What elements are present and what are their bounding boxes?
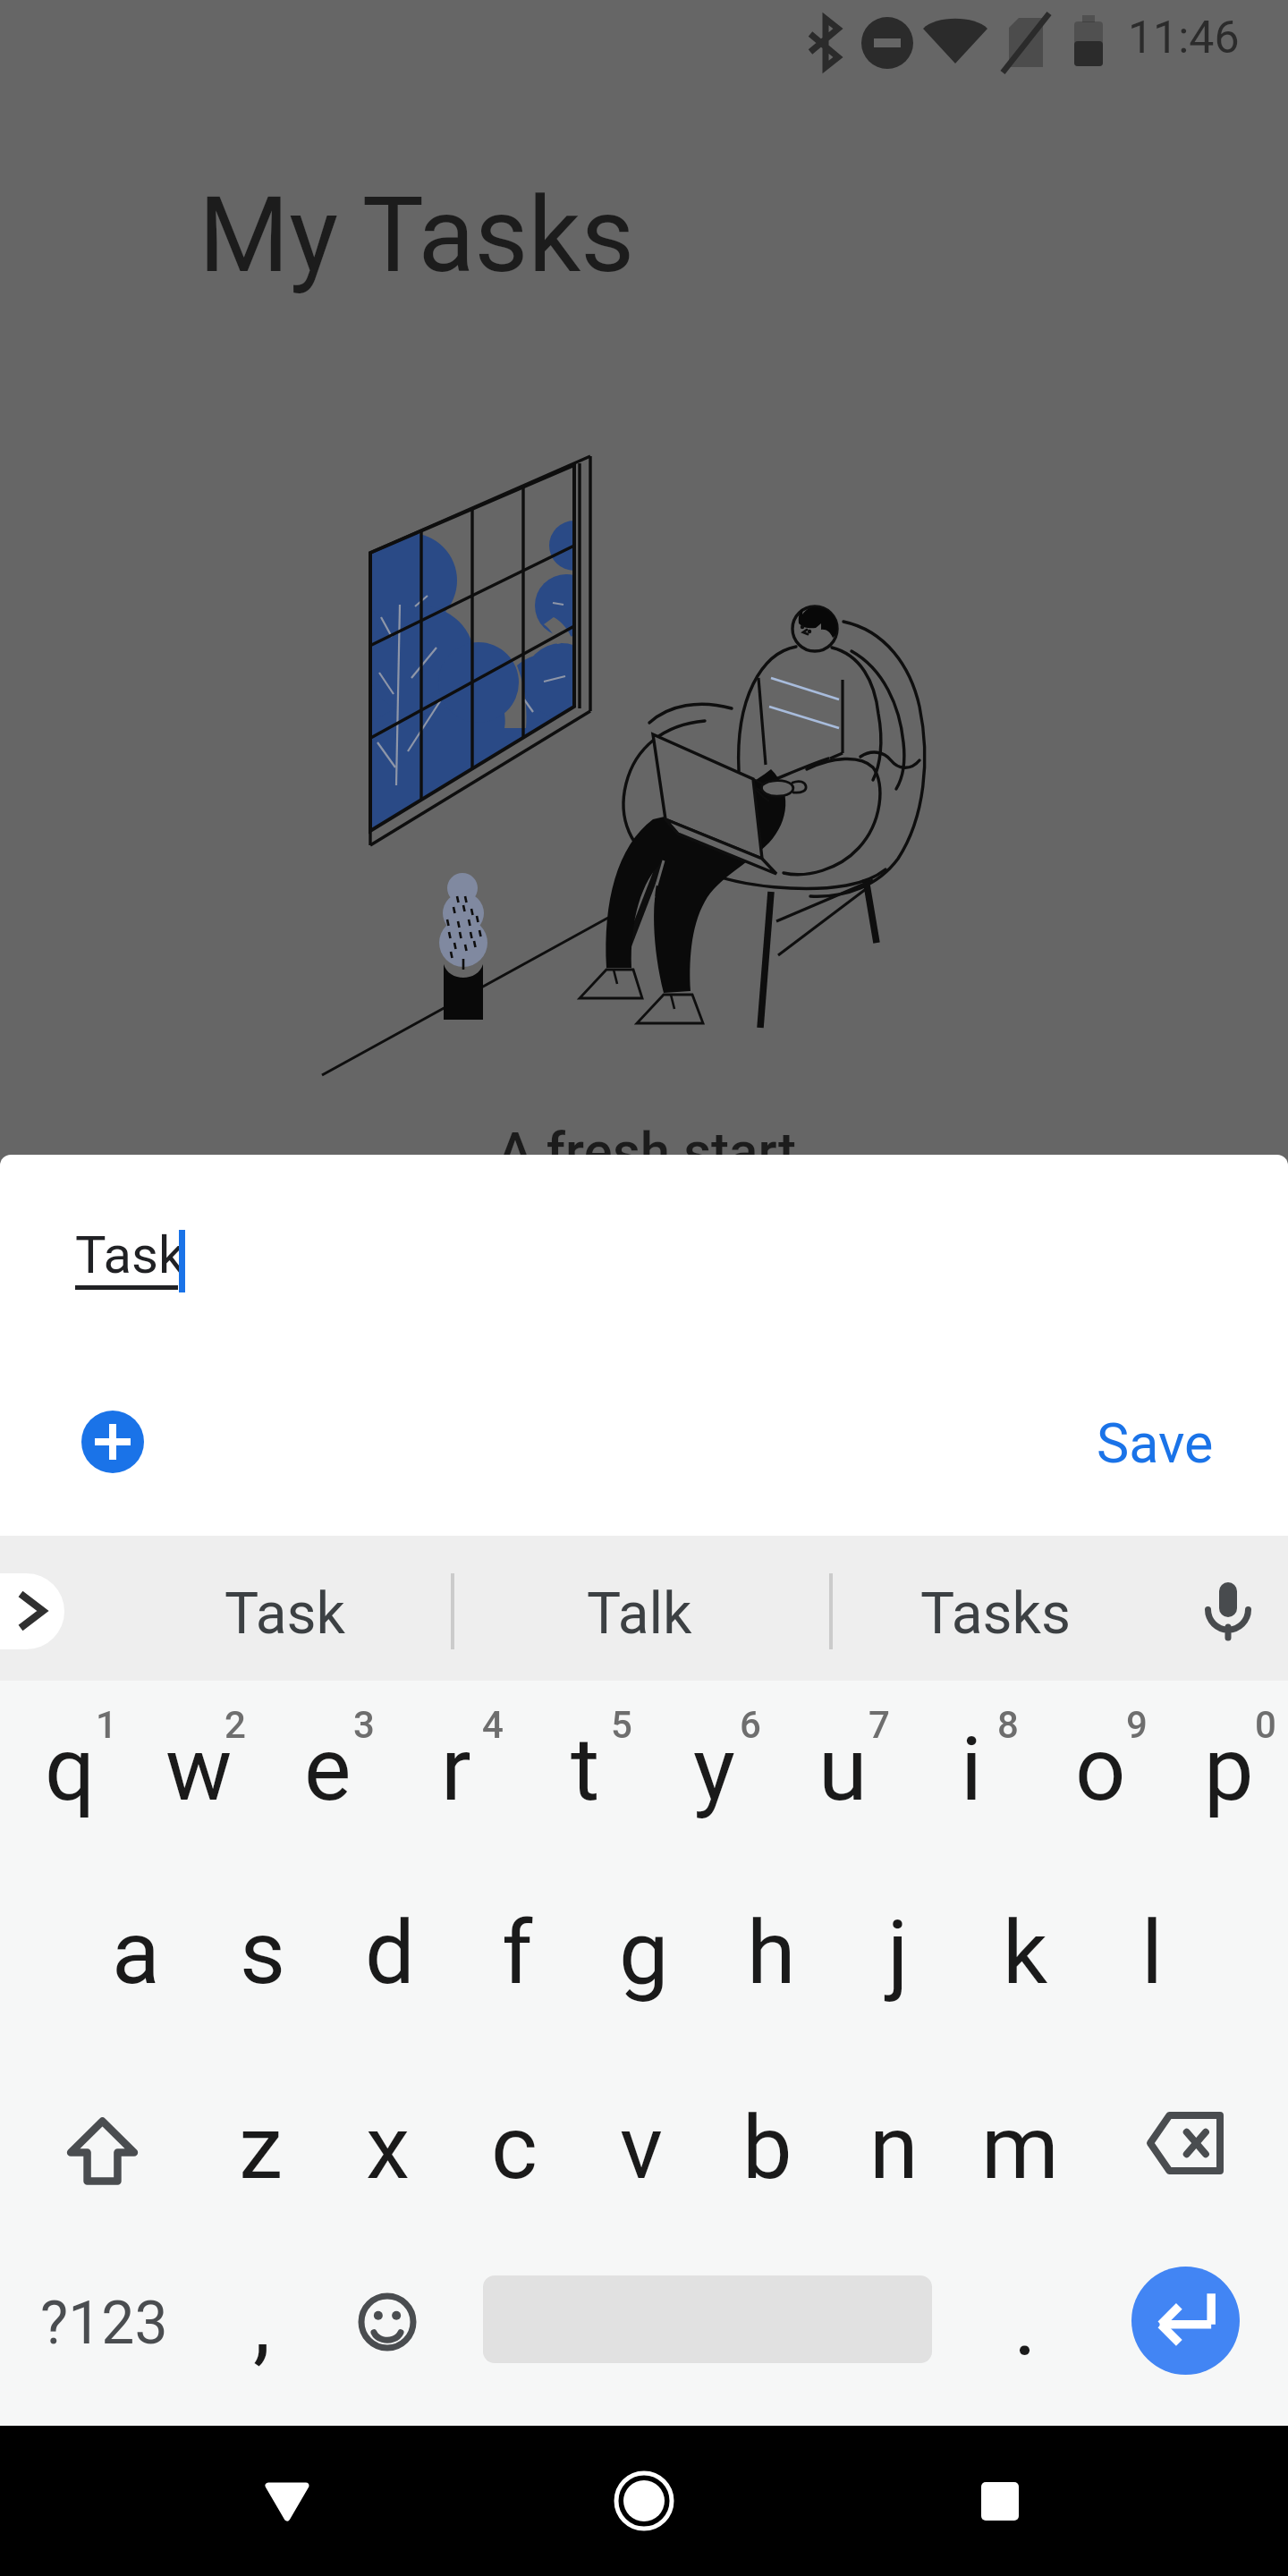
button[interactable]: Add: [81, 1411, 144, 1473]
staticText: b: [742, 2096, 792, 2199]
staticText: 3: [353, 1703, 375, 1747]
staticText: q: [45, 1717, 96, 1821]
button[interactable]: j: [835, 1866, 962, 2038]
staticText: Tasks: [920, 1580, 1071, 1648]
button[interactable]: Voice input: [1183, 1577, 1273, 1666]
button[interactable]: f: [453, 1866, 580, 2038]
staticText: Talk: [587, 1580, 692, 1648]
staticText: 6: [740, 1703, 761, 1747]
staticText: p: [1204, 1717, 1254, 1821]
button[interactable]: e: [263, 1682, 392, 1855]
staticText: 0: [1255, 1703, 1276, 1747]
button[interactable]: c: [451, 2061, 577, 2233]
staticText: a: [112, 1901, 160, 2004]
button[interactable]: x: [325, 2061, 451, 2233]
staticText: w: [165, 1717, 233, 1821]
button[interactable]: a: [72, 1866, 199, 2038]
button[interactable]: Tasks: [852, 1541, 1139, 1686]
staticText: m: [981, 2096, 1059, 2199]
staticText: f: [502, 1901, 533, 2004]
staticText: n: [869, 2096, 919, 2199]
staticText: .: [1013, 2272, 1038, 2376]
button[interactable]: g: [580, 1866, 708, 2038]
button[interactable]: v: [578, 2061, 704, 2233]
staticText: Task: [225, 1580, 345, 1648]
staticText: v: [620, 2096, 663, 2199]
button[interactable]: n: [831, 2061, 957, 2233]
staticText: x: [366, 2096, 411, 2199]
button[interactable]: y: [649, 1682, 778, 1855]
button[interactable]: q: [5, 1682, 134, 1855]
staticText: Save: [1097, 1411, 1214, 1475]
button[interactable]: Backspace: [1122, 2056, 1249, 2229]
button[interactable]: Emoji: [324, 2235, 451, 2408]
staticText: 2: [225, 1703, 246, 1747]
staticText: 4: [482, 1703, 504, 1747]
staticText: ,: [253, 2272, 271, 2376]
staticText: d: [365, 1901, 415, 2004]
button[interactable]: k: [962, 1866, 1089, 2038]
button[interactable]: w: [134, 1682, 263, 1855]
staticText: k: [1003, 1901, 1048, 2004]
staticText: e: [304, 1717, 352, 1821]
staticText: 7: [869, 1703, 890, 1747]
button[interactable]: Save: [1072, 1395, 1239, 1491]
staticText: Task: [75, 1224, 185, 1285]
button[interactable]: Home: [555, 2426, 733, 2576]
button[interactable]: z: [198, 2061, 324, 2233]
button[interactable]: Recents: [911, 2426, 1089, 2576]
staticText: z: [239, 2096, 284, 2199]
staticText: y: [693, 1717, 735, 1821]
button[interactable]: i: [907, 1682, 1036, 1855]
button[interactable]: t: [521, 1682, 649, 1855]
staticText: 1: [96, 1703, 117, 1747]
staticText: ?123: [40, 2289, 168, 2358]
staticText: h: [747, 1901, 796, 2004]
staticText: A fresh start: [3, 1120, 1288, 1182]
staticText: 11:46: [1128, 12, 1240, 64]
staticText: r: [441, 1717, 471, 1821]
staticText: g: [619, 1901, 669, 2004]
staticText: c: [491, 2096, 538, 2199]
button[interactable]: l: [1089, 1866, 1216, 2038]
staticText: 8: [997, 1703, 1019, 1747]
button[interactable]: Shift: [38, 2064, 165, 2237]
button[interactable]: .: [962, 2237, 1089, 2410]
button[interactable]: Talk: [496, 1541, 783, 1686]
button[interactable]: o: [1036, 1682, 1165, 1855]
staticText: l: [1141, 1901, 1164, 2004]
button[interactable]: b: [704, 2061, 830, 2233]
staticText: My Tasks: [199, 174, 635, 296]
staticText: s: [240, 1901, 286, 2004]
button[interactable]: m: [957, 2061, 1083, 2233]
button[interactable]: ,: [199, 2237, 326, 2410]
button[interactable]: Expand suggestions: [0, 1573, 64, 1649]
staticText: o: [1075, 1717, 1126, 1821]
staticText: 9: [1126, 1703, 1148, 1747]
staticText: u: [818, 1717, 868, 1821]
staticText: t: [571, 1717, 600, 1821]
button[interactable]: ?123: [16, 2237, 191, 2410]
staticText: j: [887, 1901, 909, 2004]
button[interactable]: u: [778, 1682, 907, 1855]
button[interactable]: p: [1165, 1682, 1288, 1855]
button[interactable]: h: [708, 1866, 835, 2038]
button[interactable]: Task: [141, 1541, 428, 1686]
staticText: i: [961, 1717, 983, 1821]
button[interactable]: Back: [198, 2426, 377, 2576]
button[interactable]: Enter: [1131, 2267, 1240, 2375]
button[interactable]: r: [392, 1682, 521, 1855]
button[interactable]: s: [199, 1866, 326, 2038]
button[interactable]: d: [326, 1866, 453, 2038]
staticText: 5: [611, 1703, 632, 1747]
